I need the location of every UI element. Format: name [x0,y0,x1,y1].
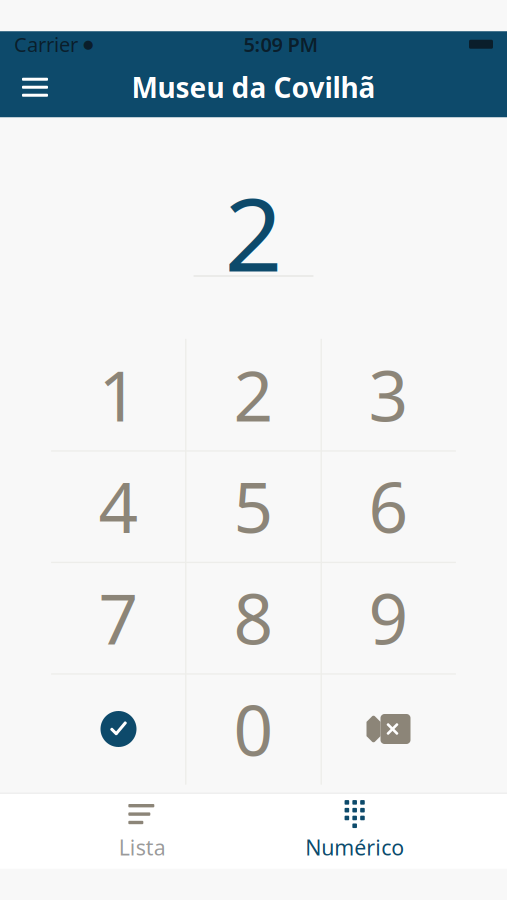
staticText: 4 [98,460,138,552]
button[interactable]: 5 [186,450,321,562]
button[interactable]: 3 [321,339,456,450]
button[interactable]: Numérico [285,799,425,863]
staticText: Museu da Covilhã [131,69,375,106]
button[interactable]: 1 [51,339,186,450]
staticText: 3 [368,348,408,441]
staticText: 0 [233,683,273,775]
staticText: Lista [119,833,166,861]
button[interactable]: Apagar [321,673,456,785]
button[interactable]: Confirmar [51,673,186,785]
button[interactable]: 2 [186,339,321,450]
staticText: 6 [368,460,408,552]
staticText: 5 [233,460,273,552]
staticText: 1 [98,348,138,441]
staticText: 9 [368,571,408,664]
staticText: Numérico [305,833,404,861]
staticText: 2 [233,348,273,441]
button[interactable]: 7 [51,562,186,673]
staticText: 5:09 PM [243,31,318,58]
staticText: 2 [224,165,282,300]
staticText: Carrier [14,31,78,58]
button[interactable]: Menu [9,64,61,110]
staticText: ● [83,37,93,51]
button[interactable]: 9 [321,562,456,673]
staticText: 8 [233,571,273,664]
button[interactable]: Lista [82,799,202,863]
button[interactable]: 4 [51,450,186,562]
button[interactable]: 8 [186,562,321,673]
button[interactable]: 6 [321,450,456,562]
button[interactable]: 0 [186,673,321,785]
staticText: 7 [98,571,138,664]
